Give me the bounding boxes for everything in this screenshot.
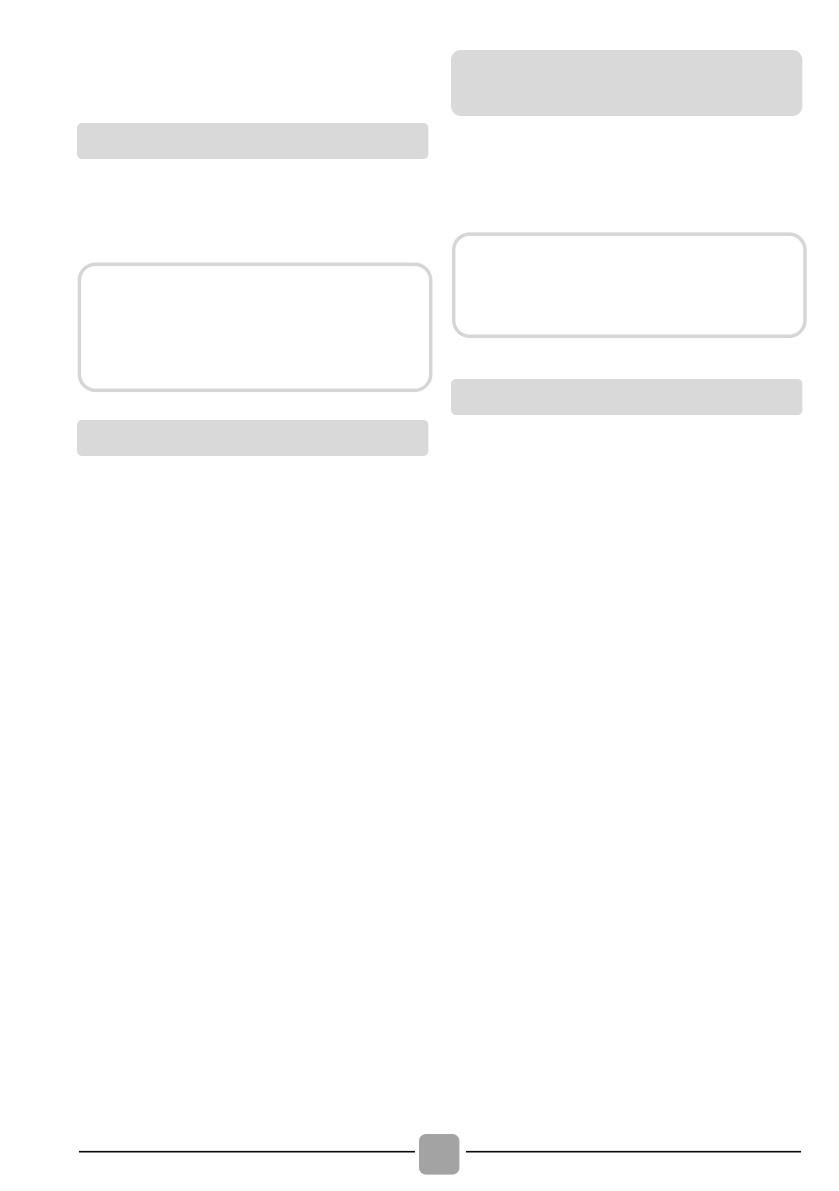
button[interactable]: Drag handle [419, 1134, 459, 1175]
button[interactable]: Loading card [454, 234, 805, 336]
button[interactable]: Loading card [79, 264, 431, 390]
